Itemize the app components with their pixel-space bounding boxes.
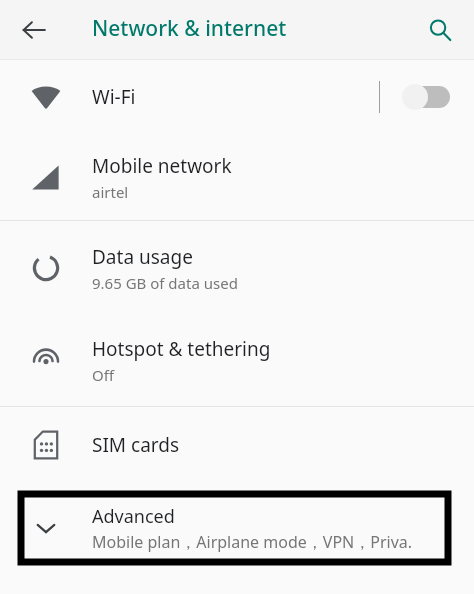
staticText: Wi-Fi bbox=[92, 84, 136, 110]
staticText: airtel bbox=[92, 182, 129, 202]
staticText: 9.65 GB of data used bbox=[92, 273, 238, 293]
button[interactable]: Advanced bbox=[0, 493, 474, 563]
staticText: Mobile network bbox=[92, 153, 232, 179]
button[interactable]: Wi-Fi toggle bbox=[402, 79, 456, 115]
staticText: Advanced bbox=[92, 504, 175, 529]
staticText: Hotspot & tethering bbox=[92, 336, 271, 362]
button[interactable]: Data usage bbox=[0, 221, 474, 315]
button[interactable]: Wi-Fi bbox=[0, 60, 474, 134]
staticText: Network & internet bbox=[92, 14, 287, 43]
button[interactable]: SIM cards bbox=[0, 407, 474, 482]
staticText: Data usage bbox=[92, 244, 193, 270]
staticText: Mobile plan，Airplane mode，VPN，Priva. bbox=[92, 531, 413, 553]
staticText: SIM cards bbox=[92, 432, 180, 458]
button[interactable]: Hotspot & tethering bbox=[0, 315, 474, 406]
button[interactable]: Search bbox=[418, 8, 462, 52]
staticText: Off bbox=[92, 365, 115, 385]
button[interactable]: Back bbox=[12, 8, 56, 52]
button[interactable]: Mobile network bbox=[0, 134, 474, 220]
